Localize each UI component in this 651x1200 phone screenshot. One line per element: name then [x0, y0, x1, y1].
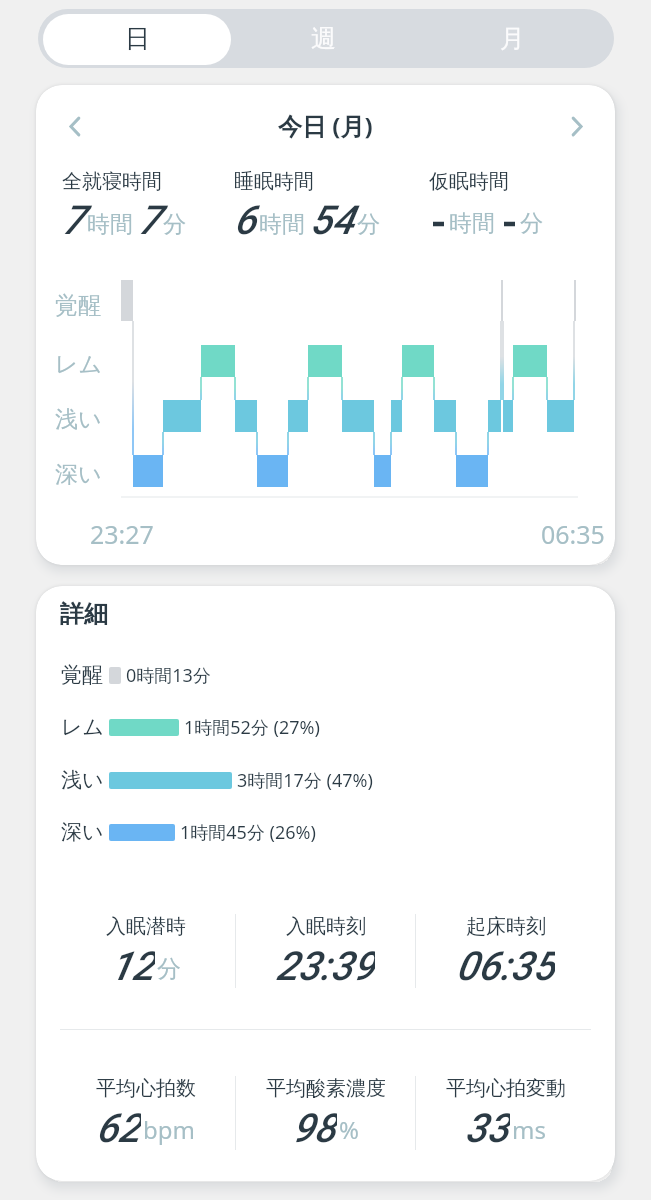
staticText: 浅い	[61, 767, 109, 793]
button[interactable]: 入眠時刻	[236, 914, 415, 988]
staticText: 浅い	[55, 405, 102, 434]
button[interactable]: 平均酸素濃度	[236, 1076, 415, 1150]
staticText: 今日 (月)	[278, 109, 373, 142]
staticText: 分	[357, 210, 380, 239]
button[interactable]: Next day	[557, 106, 597, 146]
button[interactable]: 入眠潜時	[56, 914, 235, 988]
staticText: 週	[311, 23, 336, 54]
staticText: 睡眠時間	[234, 169, 314, 194]
staticText: 12	[110, 943, 155, 988]
staticText: 覚醒	[55, 291, 101, 320]
button[interactable]: 平均心拍変動	[416, 1076, 595, 1150]
staticText: 06:35	[456, 943, 555, 988]
staticText: 0時間13分	[126, 663, 211, 688]
staticText: 分	[157, 954, 181, 984]
staticText: 7	[138, 197, 161, 244]
staticText: 7	[62, 197, 85, 244]
staticText: 1時間45分 (26%)	[180, 820, 316, 845]
staticText: 6	[234, 197, 257, 244]
staticText: 時間	[259, 210, 305, 239]
staticText: 時間	[87, 210, 133, 239]
staticText: 起床時刻	[466, 914, 546, 939]
button[interactable]: Previous day	[55, 106, 95, 146]
staticText: %	[339, 1113, 359, 1146]
staticText: レム	[61, 714, 109, 740]
staticText: 62	[96, 1105, 141, 1150]
staticText: 06:35	[541, 517, 605, 551]
staticText: 入眠時刻	[286, 914, 366, 939]
staticText: 平均心拍変動	[446, 1076, 566, 1101]
staticText: 覚醒	[61, 662, 109, 688]
staticText: 入眠潜時	[106, 914, 186, 939]
button[interactable]: 日	[43, 9, 231, 68]
staticText: 深い	[61, 819, 109, 845]
staticText: ms	[512, 1113, 546, 1146]
staticText: 平均酸素濃度	[266, 1076, 386, 1101]
button[interactable]: 起床時刻	[416, 914, 595, 988]
staticText: 月	[500, 23, 525, 54]
button[interactable]: 週	[227, 9, 419, 68]
staticText: 33	[465, 1105, 510, 1150]
staticText: 23:27	[90, 517, 154, 551]
staticText: 時間	[449, 209, 495, 238]
button[interactable]: 平均心拍数	[56, 1076, 235, 1150]
staticText: 23:39	[276, 943, 375, 988]
button[interactable]: レム	[36, 704, 615, 750]
staticText: 全就寝時間	[62, 169, 162, 194]
staticText: レム	[55, 350, 103, 379]
button[interactable]: 覚醒	[36, 652, 615, 698]
staticText: 日	[125, 23, 150, 54]
staticText: 仮眠時間	[429, 169, 509, 194]
staticText: 1時間52分 (27%)	[184, 715, 320, 740]
staticText: 分	[520, 209, 543, 238]
staticText: 98	[292, 1105, 337, 1150]
button[interactable]: 深い	[36, 809, 615, 855]
staticText: bpm	[143, 1113, 195, 1146]
staticText: 分	[163, 210, 186, 239]
staticText: 深い	[55, 460, 102, 489]
staticText: 平均心拍数	[96, 1076, 196, 1101]
button[interactable]: 浅い	[36, 757, 615, 803]
button[interactable]: 月	[419, 9, 605, 68]
staticText: 詳細	[60, 599, 108, 629]
staticText: 3時間17分 (47%)	[237, 768, 373, 793]
staticText: 54	[310, 197, 355, 244]
